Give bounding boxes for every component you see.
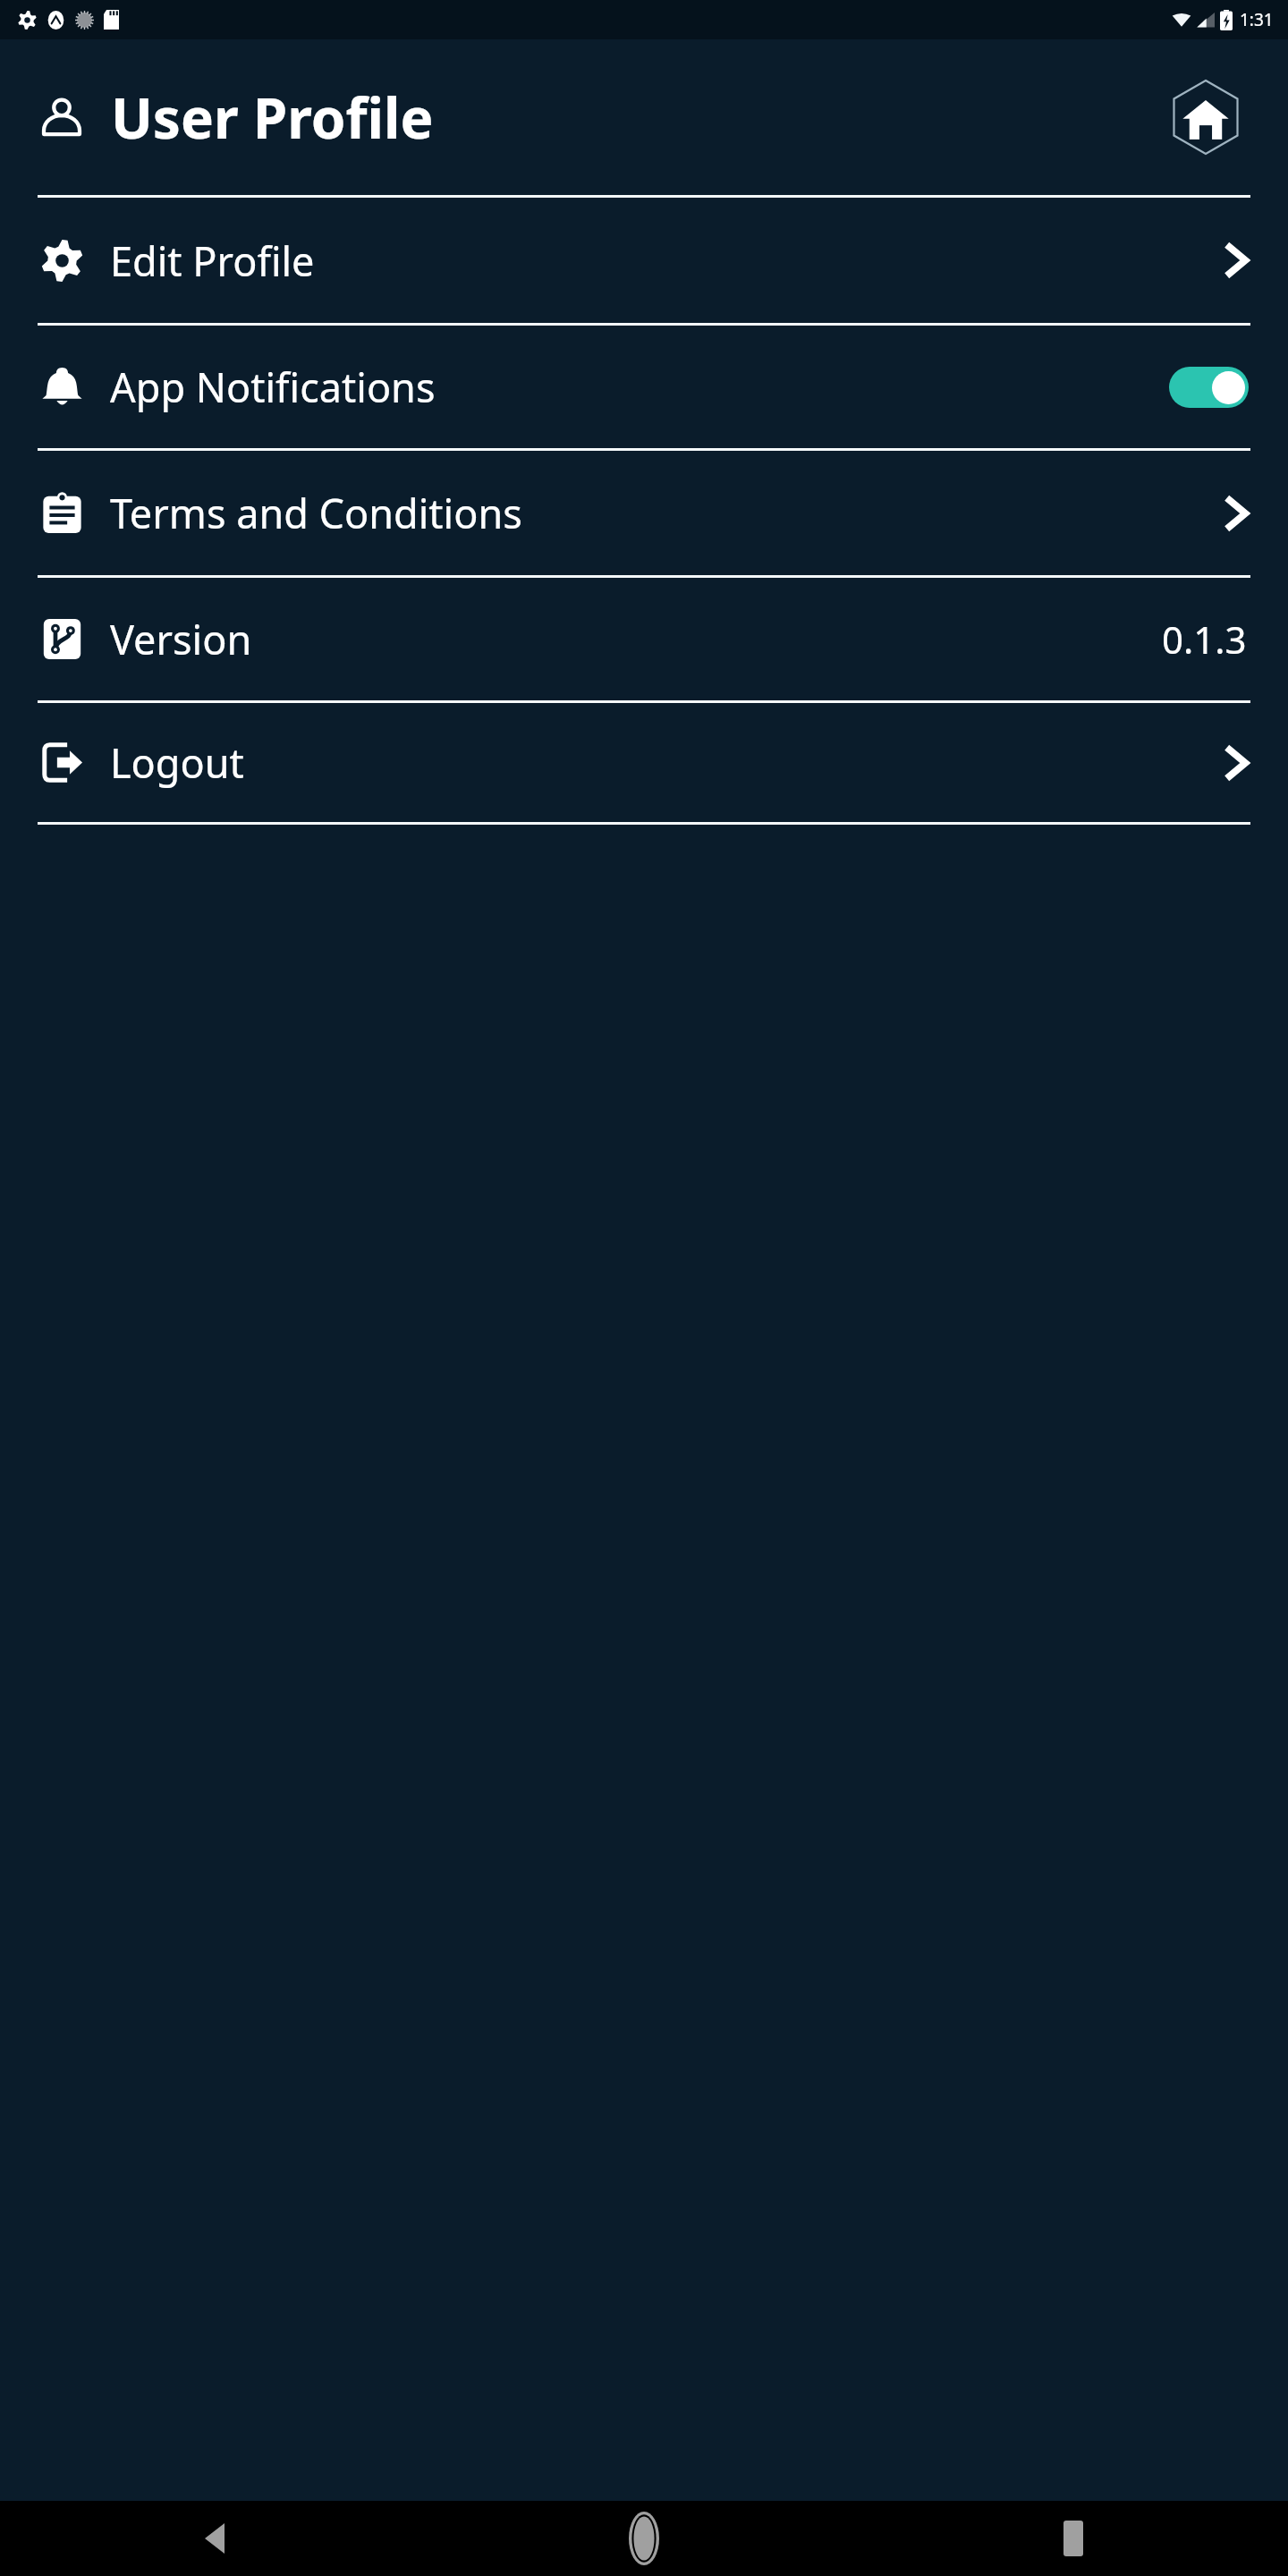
- staticText: Logout: [110, 735, 1225, 790]
- button[interactable]: Edit Profile: [0, 198, 1288, 323]
- button[interactable]: Version: [0, 578, 1288, 700]
- button[interactable]: App Notifications: [0, 326, 1288, 448]
- staticText: Terms and Conditions: [110, 486, 1225, 540]
- staticText: 1:31: [1240, 8, 1274, 31]
- other: Open: [1225, 496, 1249, 531]
- other: Open: [1225, 242, 1249, 278]
- staticText: App Notifications: [110, 360, 1169, 414]
- staticText: Edit Profile: [110, 233, 1225, 288]
- button[interactable]: Recent apps: [859, 2501, 1288, 2576]
- other: Open: [1225, 745, 1249, 781]
- button[interactable]: Terms and Conditions: [0, 451, 1288, 575]
- button[interactable]: Back: [0, 2501, 429, 2576]
- staticText: Version: [110, 612, 1162, 666]
- button[interactable]: Home: [1173, 80, 1239, 155]
- staticText: User Profile: [111, 80, 434, 155]
- button[interactable]: Logout: [0, 703, 1288, 822]
- staticText: 0.1.3: [1162, 614, 1247, 665]
- button[interactable]: Home: [429, 2501, 859, 2576]
- button[interactable]: App notifications toggle, on: [1169, 367, 1249, 408]
